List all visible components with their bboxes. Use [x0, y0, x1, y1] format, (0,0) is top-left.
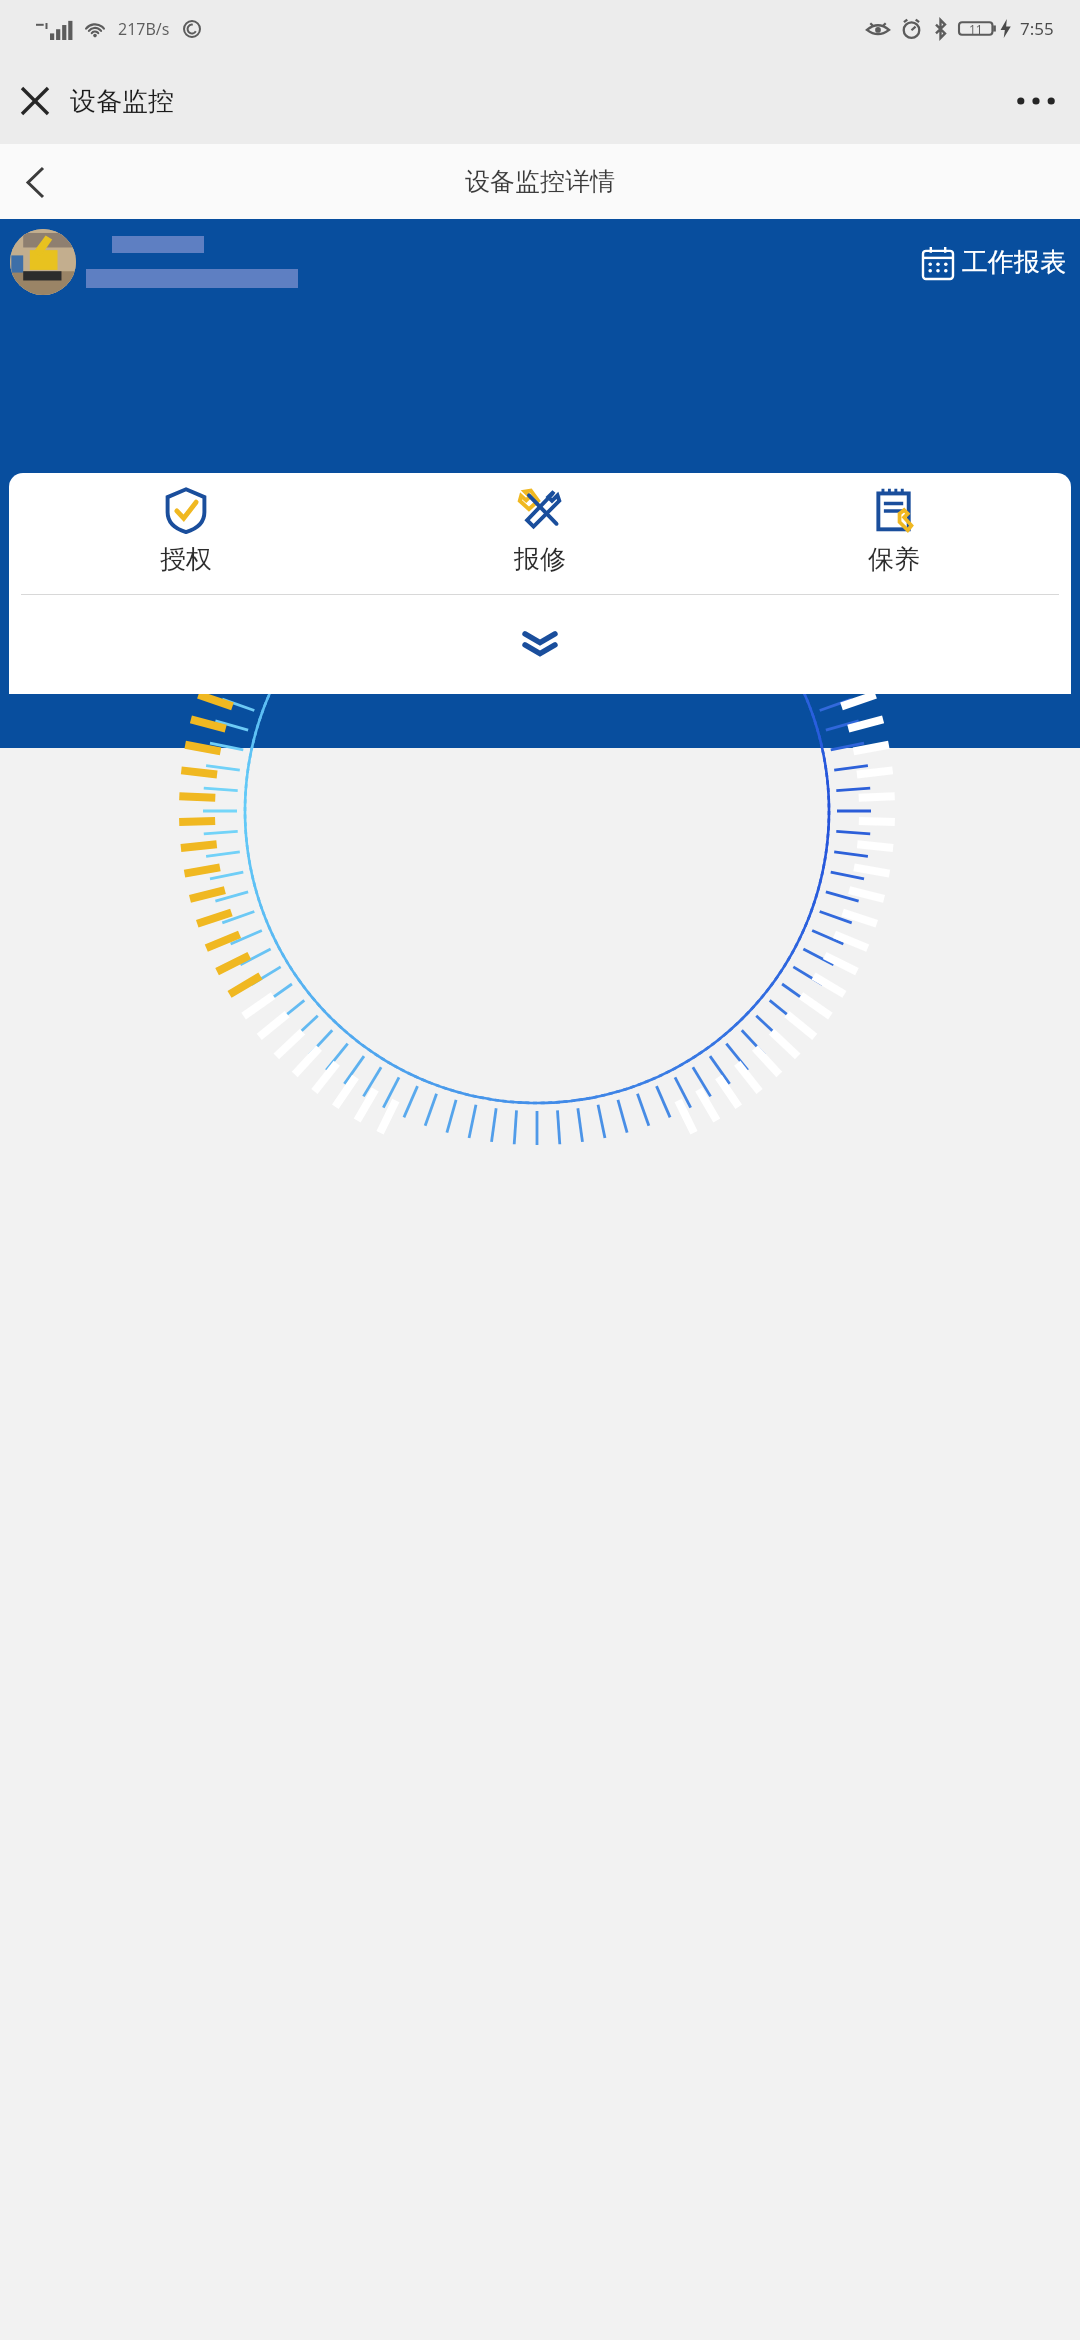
staticText: 工时: [514, 577, 566, 610]
button[interactable]: Expand more: [508, 612, 572, 676]
staticText: 工作报表: [962, 246, 1066, 279]
staticText: 保养: [868, 543, 920, 576]
staticText: 设备监控: [70, 85, 174, 118]
button[interactable]: 工作报表: [919, 238, 1070, 287]
button[interactable]: 报修: [363, 487, 717, 594]
button[interactable]: 河北省张家口市宣化...: [786, 627, 1072, 669]
staticText: 1231: [439, 455, 641, 575]
staticText: 7:55: [1020, 17, 1054, 40]
staticText: 授权: [160, 543, 212, 576]
button[interactable]: Machine photo: [10, 229, 76, 295]
staticText: 11: [969, 21, 983, 37]
button[interactable]: 保养: [717, 487, 1071, 594]
button[interactable]: Close: [8, 74, 62, 128]
staticText: 217B/s: [118, 18, 170, 40]
button[interactable]: 授权: [9, 487, 363, 594]
button[interactable]: More options: [1006, 71, 1066, 131]
staticText: 设备监控详情: [465, 166, 615, 197]
staticText: 报修: [514, 543, 566, 576]
button[interactable]: Back: [6, 153, 64, 211]
staticText: 交机:2019-01-28: [450, 622, 630, 655]
